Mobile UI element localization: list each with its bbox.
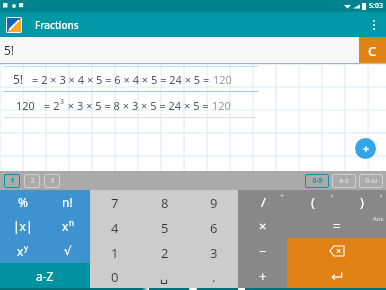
button[interactable]: − <box>238 238 287 263</box>
staticText: 4 <box>111 219 119 237</box>
button[interactable]: ( <box>288 190 337 214</box>
button[interactable]: 3 <box>189 240 238 265</box>
staticText: 3 <box>50 176 55 186</box>
staticText: a-Z <box>36 268 54 284</box>
staticText: 6 <box>210 219 218 237</box>
staticText: / <box>261 193 266 211</box>
staticText: 3 <box>210 244 218 262</box>
staticText: y <box>24 242 29 253</box>
staticText: 2 <box>30 176 35 186</box>
button[interactable]: % <box>0 190 45 214</box>
staticText: 0-9 <box>312 176 323 186</box>
button[interactable]: √ <box>45 238 90 263</box>
button[interactable]: + <box>238 263 287 288</box>
button[interactable]: More options <box>362 13 386 37</box>
button[interactable]: 0-9 <box>305 174 329 188</box>
staticText: 120 <box>212 98 231 113</box>
button[interactable]: 3 <box>44 174 60 188</box>
staticText: › <box>380 191 383 201</box>
staticText: ‹ <box>331 191 334 201</box>
staticText: = 2 × 3 × 4 × 5 = 6 × 4 × 5 = 24 × 5 = <box>32 72 213 87</box>
button[interactable]: 8 <box>140 190 189 215</box>
staticText: . <box>212 268 216 286</box>
staticText: a-z <box>339 176 349 186</box>
staticText: 9 <box>210 194 218 212</box>
staticText: 7 <box>111 194 119 212</box>
button[interactable]: a-Z <box>0 263 90 288</box>
button[interactable]: . <box>189 265 238 288</box>
button[interactable]: ) <box>337 190 386 214</box>
staticText: + <box>259 267 267 285</box>
button[interactable]: x <box>0 238 45 263</box>
button[interactable]: a-z <box>332 174 356 188</box>
button[interactable]: 5 <box>140 215 189 240</box>
button[interactable]: 0 <box>90 265 140 288</box>
staticText: 5:03 <box>369 1 383 11</box>
staticText: ( <box>311 193 315 211</box>
staticText: = <box>333 217 341 235</box>
button[interactable]: 9 <box>189 190 238 215</box>
staticText: ) <box>360 193 364 211</box>
staticText: × <box>259 217 267 235</box>
staticText: 120 <box>213 72 232 87</box>
staticText: x <box>62 218 69 234</box>
staticText: 8 <box>161 194 169 212</box>
button[interactable]: C <box>359 37 386 64</box>
staticText: ␣ <box>160 269 169 284</box>
staticText: √ <box>64 244 72 258</box>
staticText: 0-ω <box>365 176 378 186</box>
button[interactable]: 0-ω <box>359 174 383 188</box>
button[interactable]: 1 <box>4 174 20 188</box>
staticText: ÷ <box>280 191 285 201</box>
button[interactable]: = <box>287 214 386 238</box>
staticText: C <box>368 42 377 60</box>
button[interactable]: x <box>45 214 90 238</box>
staticText: |x| <box>13 218 33 234</box>
button[interactable]: × <box>238 214 287 238</box>
staticText: x <box>17 243 24 259</box>
button[interactable]: Enter <box>287 263 386 288</box>
staticText: × 3 × 5 = 8 × 3 × 5 = 24 × 5 = <box>65 98 212 113</box>
button[interactable]: 1 <box>90 240 140 265</box>
button[interactable]: Home <box>175 288 211 290</box>
staticText: Ans <box>373 215 384 223</box>
button[interactable]: ␣ <box>140 265 189 288</box>
staticText: 3 <box>60 97 65 107</box>
button[interactable]: Back <box>127 288 163 290</box>
button[interactable]: Add <box>355 138 376 159</box>
staticText: 2 <box>161 244 169 262</box>
staticText: 5 <box>161 219 169 237</box>
staticText: 0 <box>111 268 119 286</box>
staticText: 5! <box>4 42 15 58</box>
staticText: 120 <box>16 98 35 113</box>
staticText: n! <box>62 194 73 210</box>
staticText: n <box>69 217 74 228</box>
button[interactable]: Recents <box>223 288 259 290</box>
button[interactable]: 6 <box>189 215 238 240</box>
staticText: 1 <box>111 244 119 262</box>
button[interactable]: 120 <box>0 92 386 118</box>
button[interactable]: 5! <box>0 66 386 92</box>
button[interactable]: Backspace <box>287 238 386 263</box>
staticText: − <box>259 242 267 260</box>
button[interactable]: 2 <box>24 174 40 188</box>
staticText: = 2 <box>44 98 60 113</box>
button[interactable]: 4 <box>90 215 140 240</box>
button[interactable]: |x| <box>0 214 45 238</box>
staticText: % <box>18 194 28 210</box>
button[interactable]: 2 <box>140 240 189 265</box>
staticText: 5! <box>13 71 24 87</box>
button[interactable]: / <box>238 190 288 214</box>
button[interactable]: 5! <box>0 37 359 64</box>
button[interactable]: n! <box>45 190 90 214</box>
button[interactable]: 7 <box>90 190 140 215</box>
staticText: 1 <box>10 176 15 186</box>
staticText: Fractions <box>35 18 79 32</box>
